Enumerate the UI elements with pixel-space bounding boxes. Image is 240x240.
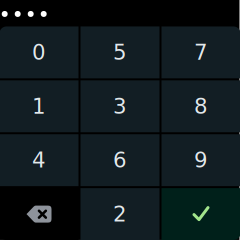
- staticText: 5: [113, 40, 127, 65]
- staticText: 9: [194, 148, 208, 173]
- staticText: 4: [32, 148, 46, 173]
- button[interactable]: 3: [80, 80, 159, 132]
- button[interactable]: 4: [0, 134, 78, 186]
- staticText: 2: [113, 202, 127, 226]
- button[interactable]: 2: [80, 188, 159, 240]
- staticText: 0: [32, 40, 46, 65]
- staticText: 1: [32, 94, 46, 119]
- button[interactable]: Confirm: [161, 188, 240, 240]
- button[interactable]: 9: [161, 134, 240, 186]
- button[interactable]: Delete: [0, 188, 78, 240]
- button[interactable]: 1: [0, 80, 78, 132]
- staticText: 7: [194, 40, 208, 65]
- button[interactable]: 8: [161, 80, 240, 132]
- button[interactable]: 5: [80, 26, 159, 78]
- button[interactable]: 6: [80, 134, 159, 186]
- staticText: 8: [194, 94, 208, 119]
- button[interactable]: 7: [161, 26, 240, 78]
- button[interactable]: 0: [0, 26, 78, 78]
- staticText: 6: [113, 148, 127, 173]
- staticText: 3: [113, 94, 127, 119]
